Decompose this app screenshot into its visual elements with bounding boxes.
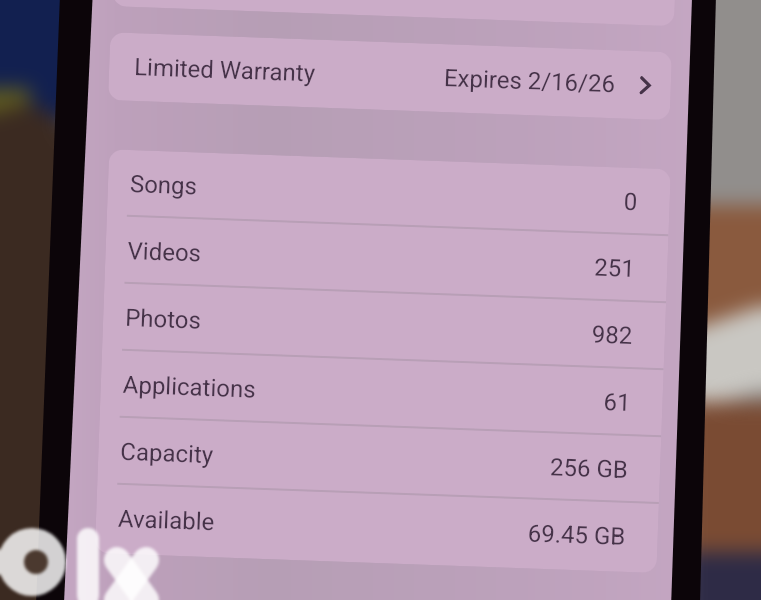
staticText: Limited Warranty xyxy=(134,53,316,87)
button[interactable]: Applications xyxy=(100,350,664,437)
staticText: Expires 2/16/26 xyxy=(443,64,616,98)
staticText: 251 xyxy=(594,254,636,283)
staticText: Photos xyxy=(125,304,202,335)
button[interactable]: Available xyxy=(95,484,659,571)
staticText: 982 xyxy=(591,321,633,350)
staticText: Applications xyxy=(122,371,256,403)
other: Warranty details xyxy=(639,76,651,94)
button[interactable]: Limited Warranty xyxy=(108,32,672,120)
staticText: Capacity xyxy=(120,438,214,469)
staticText: 69.45 GB xyxy=(527,519,626,551)
button[interactable]: Capacity xyxy=(97,417,661,504)
staticText: 256 GB xyxy=(550,453,629,484)
staticText: 61 xyxy=(603,388,631,417)
staticText: Songs xyxy=(129,170,198,200)
button[interactable]: Videos xyxy=(104,216,668,303)
button[interactable]: Photos xyxy=(102,283,666,370)
staticText: 0 xyxy=(623,188,638,216)
staticText: Videos xyxy=(127,237,202,267)
button[interactable]: Songs xyxy=(107,149,671,236)
staticText: Available xyxy=(117,505,215,536)
